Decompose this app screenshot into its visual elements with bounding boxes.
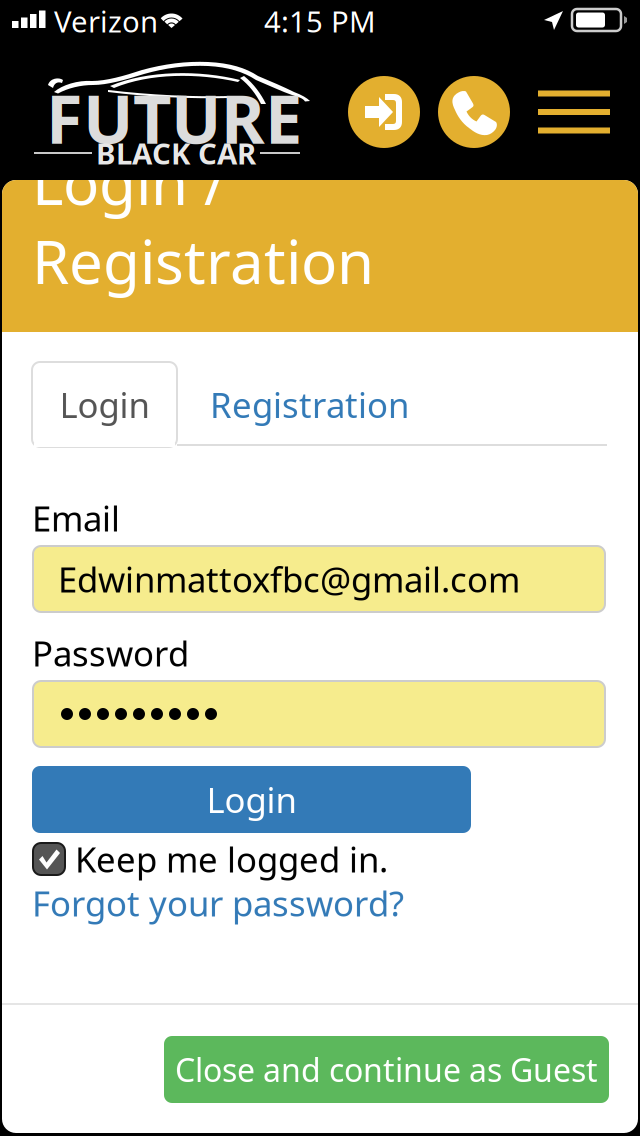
staticText: Email [32, 495, 120, 541]
staticText: Password [32, 630, 189, 676]
staticText: Registration [32, 221, 374, 301]
staticText: Forgot your password? [32, 880, 404, 926]
staticText: Keep me logged in. [75, 836, 388, 882]
staticText: FUTURE [46, 74, 302, 162]
button[interactable]: Call [438, 76, 510, 148]
staticText: Registration [210, 381, 409, 427]
button[interactable]: Keep me logged in. [33, 836, 388, 882]
staticText: Login / [32, 142, 226, 222]
staticText: BLACK CAR [96, 133, 256, 172]
staticText: Edwinmattoxfbc@gmail.com [58, 556, 520, 602]
button[interactable]: Forgot your password? [32, 880, 404, 926]
staticText: Login [59, 381, 149, 427]
button[interactable]: Log in [348, 76, 420, 148]
button[interactable]: Menu [529, 76, 619, 148]
button[interactable]: Login [32, 766, 471, 833]
staticText: Close and continue as Guest [175, 1048, 598, 1091]
button[interactable]: Close and continue as Guest [164, 1036, 609, 1103]
button[interactable]: Login [32, 362, 177, 447]
staticText: Verizon [54, 1, 158, 40]
staticText: Login [206, 776, 296, 822]
staticText: 4:15 PM [264, 1, 376, 40]
button[interactable]: Registration [177, 363, 434, 446]
